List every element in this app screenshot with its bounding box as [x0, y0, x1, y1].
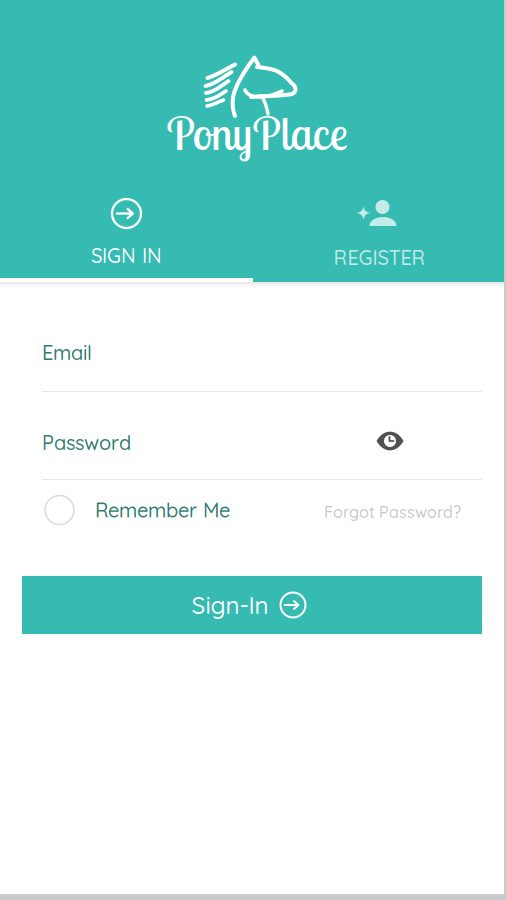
staticText: SIGN IN — [91, 243, 162, 268]
staticText: Sign-In — [191, 590, 268, 620]
staticText: Remember Me — [95, 497, 230, 522]
staticText: Password — [42, 430, 131, 455]
staticText: PonyPlace — [166, 104, 347, 161]
button[interactable]: Show password — [368, 424, 412, 458]
button[interactable]: SIGN IN — [0, 194, 253, 280]
button[interactable]: Sign-In — [22, 576, 482, 634]
button[interactable]: Remember Me — [45, 490, 230, 530]
button[interactable]: Forgot Password? — [324, 494, 461, 530]
button[interactable]: REGISTER — [253, 194, 506, 280]
staticText: Email — [42, 340, 92, 365]
staticText: Forgot Password? — [324, 502, 461, 522]
staticText: REGISTER — [333, 245, 425, 270]
